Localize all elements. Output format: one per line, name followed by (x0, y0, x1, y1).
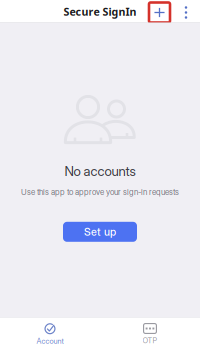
staticText: OTP (142, 336, 157, 345)
button[interactable]: Add account (149, 0, 170, 23)
button[interactable]: Account (0, 317, 100, 345)
button[interactable]: Set up (63, 222, 137, 242)
button[interactable]: OTP (100, 317, 200, 345)
staticText: No accounts (64, 163, 135, 179)
staticText: Use this app to approve your sign-in req… (21, 187, 179, 197)
button[interactable]: More options (180, 0, 192, 23)
staticText: Secure SignIn (63, 4, 136, 19)
staticText: Set up (84, 225, 116, 238)
staticText: Account (36, 336, 63, 345)
